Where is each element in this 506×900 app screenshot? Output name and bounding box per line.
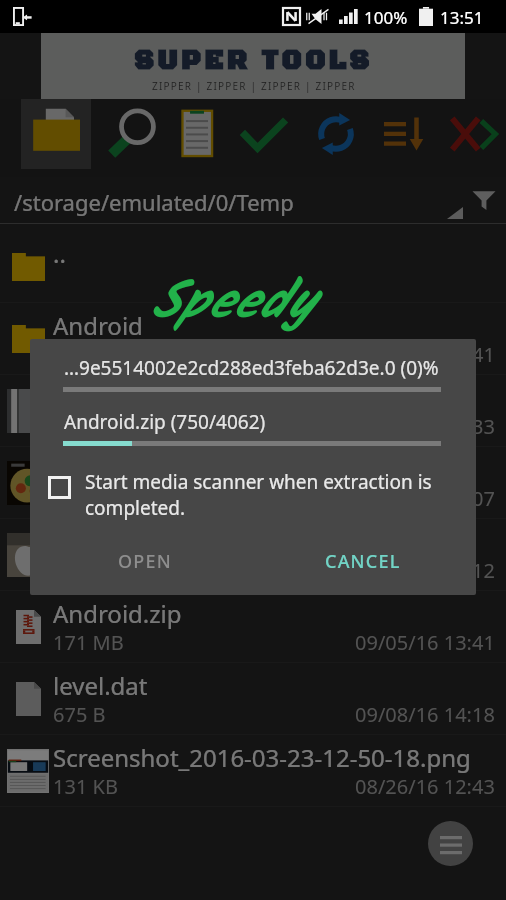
button[interactable]: CANCEL (313, 539, 413, 584)
button[interactable]: apple (0, 519, 506, 591)
staticText: 171 MB (53, 629, 124, 656)
staticText: /storage/emulated/0/Temp (14, 187, 294, 217)
staticText: 131 KB (53, 773, 118, 800)
staticText: 09/05/16 13:07 (355, 485, 495, 512)
staticText: …9e5514002e2cd288ed3feba62d3e.0 (0)% (64, 355, 439, 381)
button[interactable]: OPEN (106, 539, 184, 584)
staticText: 13:51 (440, 6, 484, 29)
button[interactable]: .. (0, 231, 506, 303)
staticText: food (53, 453, 106, 486)
staticText: 09/05/16 13:41 (355, 341, 495, 368)
button[interactable]: /storage/emulated/0/Temp (0, 177, 462, 231)
staticText: 08/26/16 12:43 (355, 773, 495, 800)
staticText: Speedy (150, 263, 313, 346)
staticText: CANCEL (325, 549, 401, 574)
button[interactable]: level.dat (0, 663, 506, 735)
button[interactable]: Sort (369, 99, 439, 169)
button[interactable]: Screenshot_2016-03-23-12-50-18.png (0, 735, 506, 807)
button[interactable]: Refresh (301, 99, 371, 169)
staticText: 100% (364, 6, 408, 29)
button[interactable]: Folder (21, 99, 91, 169)
button[interactable]: Search (98, 99, 168, 169)
button[interactable]: Menu (428, 821, 473, 866)
button[interactable]: food (0, 447, 506, 519)
button[interactable]: Android.zip (0, 591, 506, 663)
staticText: level.dat (53, 669, 148, 702)
staticText: 09/05/16 13:33 (355, 413, 495, 440)
button[interactable]: Filter (462, 177, 506, 231)
staticText: OPEN (118, 549, 172, 574)
staticText: Android (53, 309, 143, 342)
staticText: doc (53, 381, 94, 414)
staticText: SUPER TOOLS (134, 44, 373, 78)
staticText: Android.zip (750/4062) (64, 409, 266, 435)
staticText: Start media scanner when extraction is c… (85, 469, 458, 520)
staticText: Android.zip (53, 597, 182, 630)
staticText: Screenshot_2016-03-23-12-50-18.png (53, 741, 471, 774)
button[interactable]: Android (0, 303, 506, 375)
staticText: 09/08/16 14:18 (355, 701, 495, 728)
button[interactable]: Exit (437, 99, 506, 169)
staticText: 09/05/16 13:12 (355, 557, 495, 584)
staticText: .. (53, 237, 66, 270)
button[interactable]: Start media scanner when extraction is c… (48, 469, 458, 520)
staticText: ZIPPER | ZIPPER | ZIPPER | ZIPPER (152, 79, 356, 93)
staticText: 09/05/16 13:41 (355, 629, 495, 656)
staticText: 675 B (53, 701, 106, 728)
button[interactable]: Select all (229, 99, 299, 169)
button[interactable]: Clipboard (162, 99, 232, 169)
button[interactable]: doc (0, 375, 506, 447)
